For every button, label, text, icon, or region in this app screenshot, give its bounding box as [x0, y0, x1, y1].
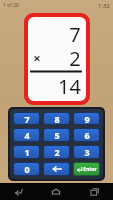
button[interactable]: Backspace [44, 163, 69, 175]
staticText: 14 [58, 73, 81, 98]
staticText: 9 [84, 113, 90, 124]
button[interactable]: Back [0, 183, 37, 200]
button[interactable]: 8 [44, 113, 69, 124]
button[interactable]: Recent apps [75, 183, 113, 200]
button[interactable]: 7 [28, 17, 86, 101]
button[interactable]: Enter [74, 163, 99, 175]
staticText: 2 [54, 146, 60, 158]
staticText: 6 [84, 129, 90, 141]
staticText: 0 [24, 163, 30, 175]
button[interactable]: 3 [74, 146, 99, 158]
button[interactable]: 5 [44, 129, 69, 141]
staticText: 1 of 20 [3, 2, 19, 9]
button[interactable]: 7 [14, 113, 39, 124]
staticText: 1:32 [98, 2, 110, 10]
staticText: 8 [54, 113, 60, 124]
button[interactable]: 2 [44, 146, 69, 158]
staticText: 7 [24, 113, 30, 124]
staticText: 7 [69, 21, 81, 45]
button[interactable]: 6 [74, 129, 99, 141]
button[interactable]: 0 [14, 163, 39, 175]
button[interactable]: 9 [74, 113, 99, 124]
staticText: 4 [24, 129, 30, 141]
staticText: 1 [24, 146, 30, 158]
button[interactable]: 4 [14, 129, 39, 141]
button[interactable]: Home [37, 183, 75, 200]
button[interactable]: 1 [14, 146, 39, 158]
staticText: × [33, 49, 41, 67]
staticText: 5 [54, 129, 60, 141]
staticText: 2 [69, 45, 81, 70]
staticText: 3 [84, 146, 90, 158]
staticText: Enter [83, 166, 97, 173]
